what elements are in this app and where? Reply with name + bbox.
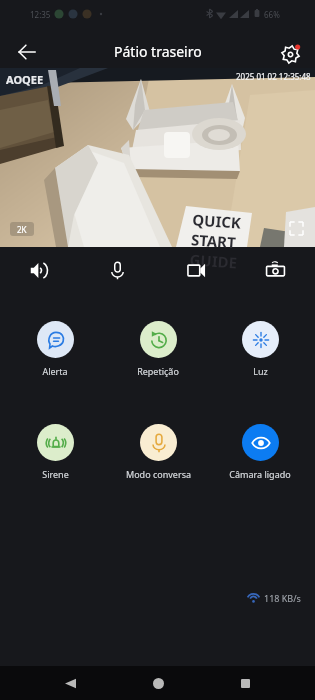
button[interactable]: Câmara ligado	[212, 424, 308, 480]
button[interactable]: Settings	[273, 37, 307, 71]
staticText: Repetição	[137, 365, 179, 377]
staticText: Luz	[253, 365, 268, 377]
button[interactable]: Recent apps	[228, 666, 262, 700]
button[interactable]: Alerta	[7, 321, 103, 377]
staticText: 12:35	[30, 9, 51, 20]
button[interactable]: Repetição	[110, 321, 206, 377]
staticText: Câmara ligado	[229, 468, 291, 480]
button[interactable]: Microphone	[78, 247, 157, 293]
button[interactable]: Back	[10, 35, 44, 69]
button[interactable]: Record video	[157, 247, 236, 293]
staticText: Pátio traseiro	[114, 42, 202, 61]
staticText: 66%	[264, 9, 280, 20]
button[interactable]: Sirene	[7, 424, 103, 480]
staticText: 2025 01 02 12:35:48	[236, 71, 311, 82]
button[interactable]: Modo conversa	[110, 424, 206, 480]
staticText: Modo conversa	[126, 468, 191, 480]
staticText: QUICK	[192, 209, 242, 233]
staticText: Alerta	[42, 365, 68, 377]
button[interactable]: Fullscreen	[287, 219, 305, 237]
button[interactable]: Back	[53, 666, 87, 700]
button[interactable]: 2K	[10, 222, 34, 236]
button[interactable]: Luz	[212, 321, 308, 377]
staticText: 118 KB/s	[264, 592, 301, 604]
button[interactable]: Home	[141, 666, 175, 700]
staticText: Sirene	[42, 468, 69, 480]
button[interactable]: Speaker	[0, 247, 78, 293]
staticText: AOQEE	[6, 72, 44, 87]
button[interactable]: Snapshot	[236, 247, 315, 293]
staticText: 2K	[17, 224, 27, 235]
staticText: START	[190, 229, 237, 252]
staticText: GUIDE	[189, 249, 238, 273]
